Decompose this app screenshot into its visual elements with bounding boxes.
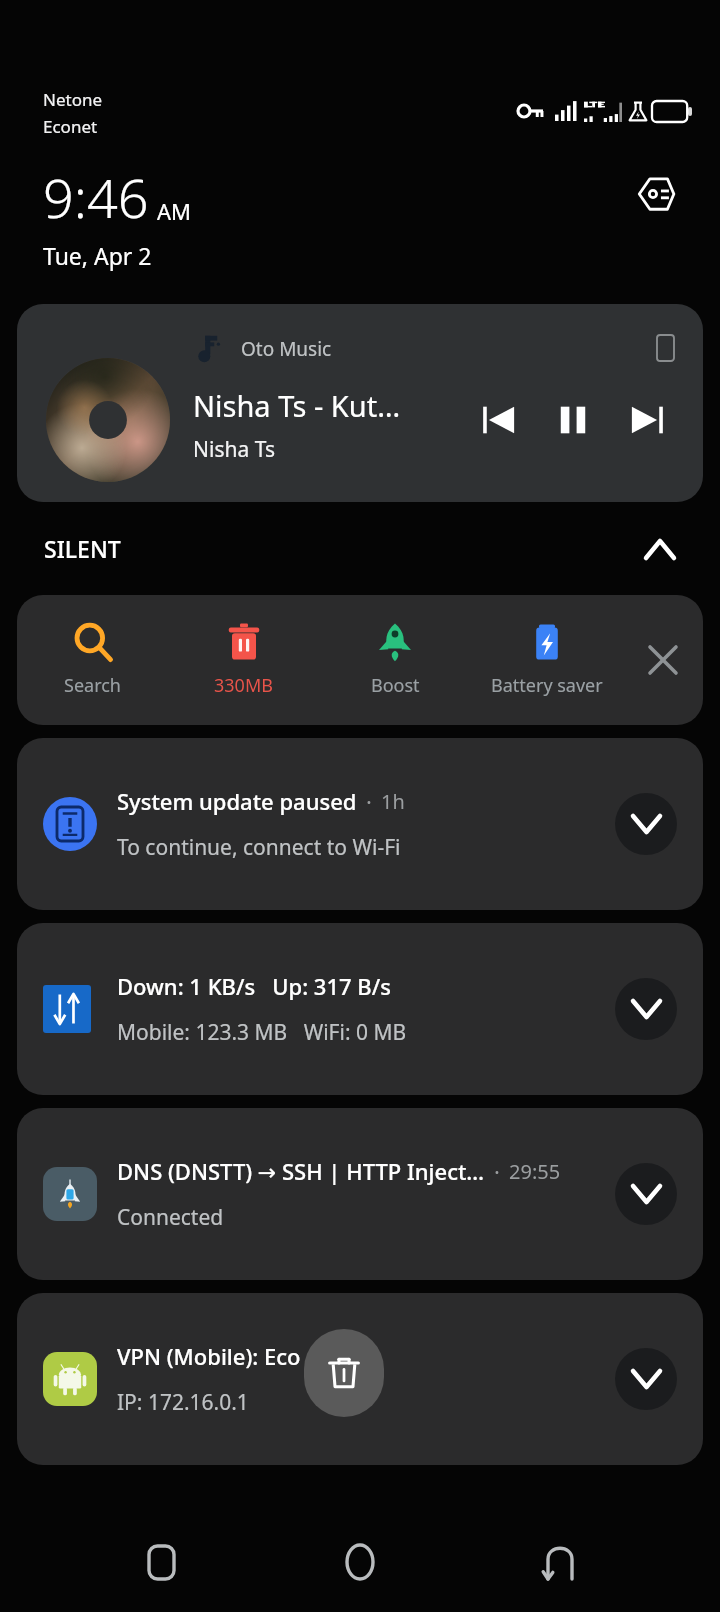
staticText: DNS (DNSTT) → SSH | HTTP Inject… [117,1156,485,1186]
button[interactable]: Close [623,595,703,725]
button[interactable]: VPN (Mobile): Eco [17,1293,703,1465]
staticText: · [366,786,372,816]
staticText: 1h [381,788,405,815]
button[interactable]: Delete notification [304,1329,384,1417]
staticText: Down: 1 KB/s Up: 317 B/s [117,971,391,1001]
staticText: 330MB [214,673,273,698]
button[interactable]: Home [321,1523,399,1601]
staticText: System update paused [117,786,357,816]
button[interactable]: SILENT [0,502,720,595]
staticText: Boost [371,673,420,698]
button[interactable]: Recents [122,1523,200,1601]
staticText: VPN (Mobile): Eco [117,1341,301,1371]
staticText: IP: 172.16.0.1 [117,1388,249,1417]
button[interactable]: Search [17,595,168,725]
button[interactable]: Boost [319,595,471,725]
staticText: Connected [117,1203,224,1232]
button[interactable]: Expand notification [615,978,677,1040]
button[interactable]: Oto Music [17,304,703,502]
button[interactable]: Settings [634,172,678,216]
staticText: Nisha Ts - Kut… [193,386,401,425]
button[interactable]: Expand notification [615,1348,677,1410]
staticText: 29:55 [509,1158,561,1185]
staticText: Nisha Ts [193,435,276,464]
button[interactable]: Expand notification [615,1163,677,1225]
staticText: Tue, Apr 2 [43,240,152,271]
staticText: Netone [43,88,103,111]
button[interactable]: Output device [649,332,681,364]
staticText: Oto Music [241,336,332,362]
button[interactable]: Next [621,394,673,446]
staticText: AM [157,196,192,226]
staticText: 9:46 [43,160,149,234]
button[interactable]: Down: 1 KB/s Up: 317 B/s [17,923,703,1095]
button[interactable]: Pause [547,394,599,446]
staticText: Econet [43,115,98,138]
staticText: To continue, connect to Wi-Fi [117,833,401,862]
button[interactable]: Expand notification [615,793,677,855]
button[interactable]: Previous [473,394,525,446]
staticText: Mobile: 123.3 MB WiFi: 0 MB [117,1018,407,1047]
staticText: Battery saver [491,673,603,698]
staticText: SILENT [44,533,121,564]
other: Collapse silent section [638,527,682,571]
button[interactable]: Battery saver [471,595,623,725]
staticText: Search [64,673,121,698]
button[interactable]: DNS (DNSTT) → SSH | HTTP Inject… [17,1108,703,1280]
button[interactable]: 330MB [168,595,319,725]
button[interactable]: System update paused [17,738,703,910]
staticText: · [494,1156,500,1186]
button[interactable]: Back [521,1523,599,1601]
